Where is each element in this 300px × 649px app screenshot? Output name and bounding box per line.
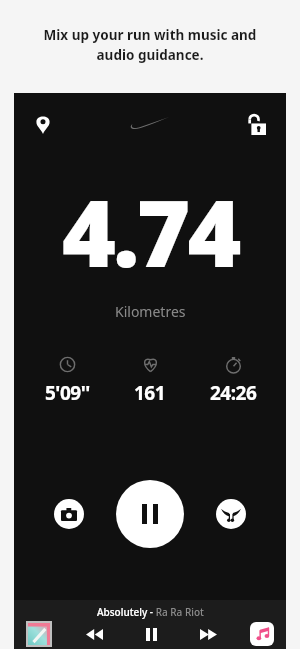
button[interactable]: Album art bbox=[28, 623, 50, 645]
button[interactable]: Take a photo bbox=[54, 499, 84, 529]
staticText: 161 bbox=[134, 380, 166, 406]
button[interactable]: Pause music bbox=[136, 619, 166, 649]
staticText: Absolutely - Ra Ra Riot bbox=[97, 605, 204, 619]
button[interactable]: Heart rate bbox=[110, 356, 190, 406]
staticText: Mix up your run with music and audio gui… bbox=[28, 26, 272, 64]
button[interactable]: Location bbox=[26, 107, 60, 141]
button[interactable]: Elapsed time bbox=[193, 356, 273, 406]
staticText: 4.74 bbox=[62, 169, 239, 294]
button[interactable]: Unlock screen bbox=[240, 107, 274, 141]
button[interactable]: Audio guided run bbox=[216, 499, 246, 529]
button[interactable]: Previous track bbox=[79, 619, 109, 649]
staticText: 5'09'' bbox=[45, 380, 90, 406]
staticText: 24:26 bbox=[210, 380, 257, 406]
button[interactable]: Next track bbox=[193, 619, 223, 649]
button[interactable]: Average pace bbox=[27, 356, 107, 406]
button[interactable]: Open Apple Music bbox=[250, 622, 274, 646]
button[interactable]: Pause run bbox=[116, 480, 184, 548]
staticText: Kilometres bbox=[115, 302, 186, 321]
